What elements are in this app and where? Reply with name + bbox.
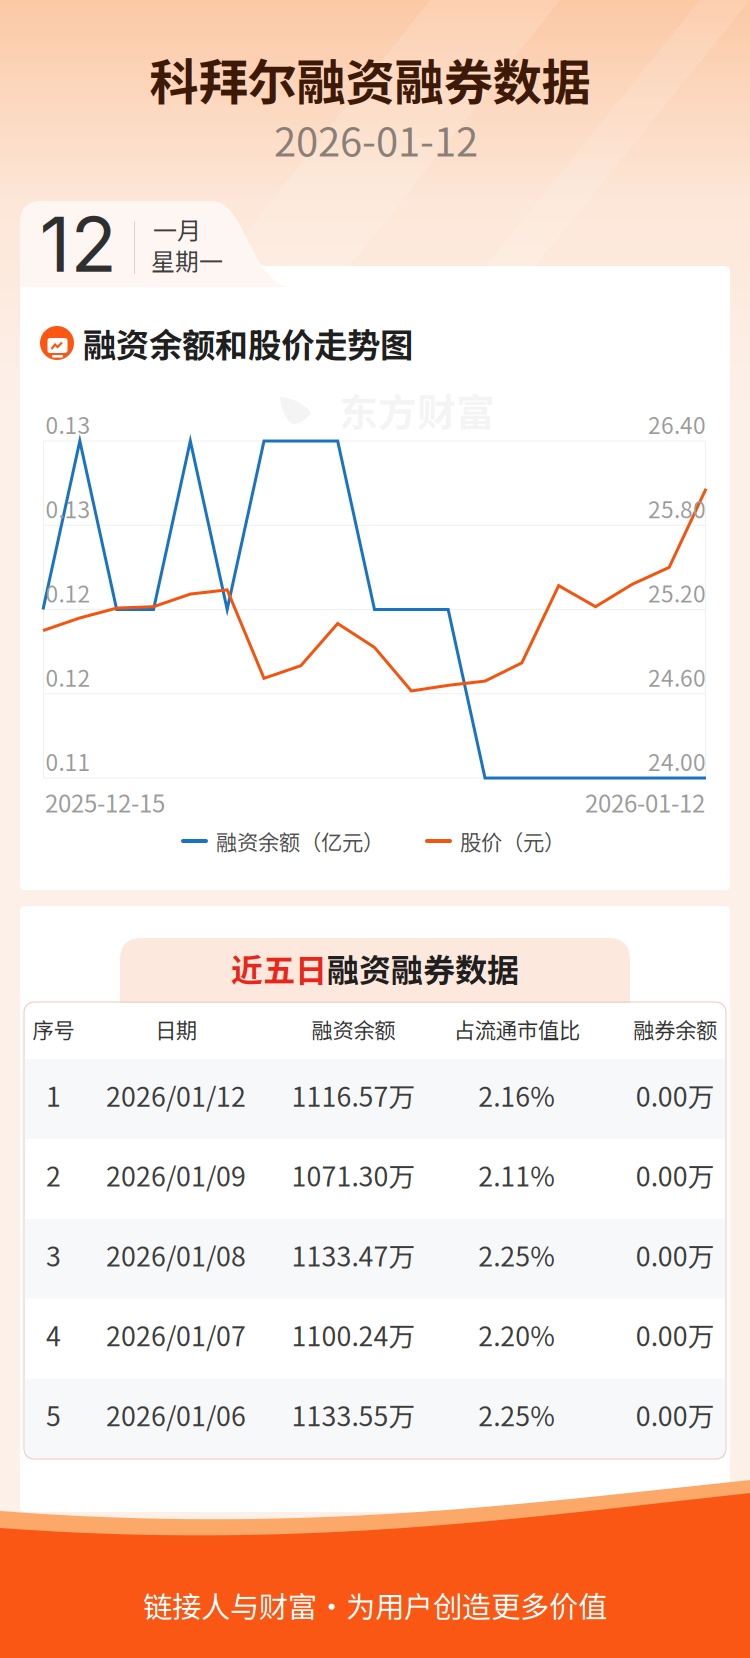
staticText: 2026/01/08 — [106, 1235, 246, 1274]
staticText: 融资余额和股价走势图 — [83, 319, 413, 367]
staticText: 0.00万 — [636, 1156, 715, 1194]
staticText: 1133.55万 — [292, 1395, 416, 1434]
staticText: 2.25% — [478, 1235, 555, 1274]
staticText: 股价（元） — [460, 826, 565, 856]
staticText: 星期一 — [151, 243, 223, 277]
staticText: 25.20 — [648, 576, 706, 609]
staticText: 0.13 — [45, 492, 90, 525]
staticText: 2.16% — [478, 1076, 555, 1114]
staticText: 12 — [39, 198, 116, 290]
staticText: 日期 — [155, 1014, 197, 1044]
staticText: 近五日 — [231, 945, 327, 991]
staticText: 0.12 — [45, 660, 90, 693]
staticText: 科拜尔融资融券数据 — [149, 43, 590, 115]
staticText: 2026-01-12 — [585, 785, 705, 819]
staticText: 2.25% — [478, 1395, 555, 1434]
staticText: 2 — [46, 1156, 61, 1194]
staticText: 1 — [46, 1076, 61, 1114]
staticText: 24.60 — [648, 660, 706, 693]
staticText: 2025-12-15 — [45, 785, 165, 819]
staticText: 2026-01-12 — [274, 110, 478, 168]
staticText: 1116.57万 — [292, 1076, 416, 1114]
staticText: 0.12 — [45, 576, 90, 609]
staticText: 2.20% — [478, 1315, 555, 1354]
staticText: 2026/01/06 — [106, 1395, 246, 1434]
staticText: 4 — [46, 1315, 61, 1354]
staticText: 2026/01/07 — [106, 1315, 246, 1354]
staticText: 0.11 — [45, 745, 90, 777]
staticText: 5 — [46, 1395, 61, 1434]
staticText: 24.00 — [648, 745, 706, 777]
staticText: 0.00万 — [636, 1235, 715, 1274]
staticText: 0.00万 — [636, 1315, 715, 1354]
staticText: 链接人与财富·为用户创造更多价值 — [143, 1584, 607, 1626]
staticText: 融券余额 — [633, 1014, 717, 1044]
staticText: 0.00万 — [636, 1395, 715, 1434]
staticText: 融资余额（亿元） — [216, 826, 384, 856]
staticText: 0.00万 — [636, 1076, 715, 1114]
staticText: 一月 — [153, 212, 201, 246]
staticText: 2026/01/12 — [106, 1076, 246, 1114]
staticText: 26.40 — [648, 408, 706, 440]
staticText: 3 — [46, 1235, 61, 1274]
staticText: 1100.24万 — [292, 1315, 416, 1354]
staticText: 1133.47万 — [292, 1235, 416, 1274]
staticText: 东方财富 — [339, 382, 495, 438]
staticText: 序号 — [33, 1014, 75, 1044]
staticText: 融资余额 — [312, 1014, 396, 1044]
staticText: 2.11% — [478, 1156, 555, 1194]
staticText: 占流通市值比 — [454, 1014, 580, 1044]
staticText: 0.13 — [45, 408, 90, 440]
staticText: 1071.30万 — [292, 1156, 416, 1194]
staticText: 25.80 — [648, 492, 706, 525]
staticText: 融资融券数据 — [327, 945, 519, 991]
staticText: 2026/01/09 — [106, 1156, 246, 1194]
